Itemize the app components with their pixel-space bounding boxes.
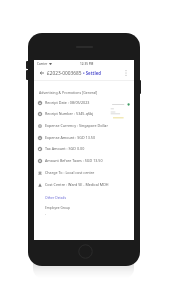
button[interactable]: Receipt Date : 08/05/2023 xyxy=(38,98,110,107)
staticText: Receipt Date : 08/05/2023 xyxy=(45,100,90,105)
button[interactable]: Other Details xyxy=(45,195,67,200)
staticText: Advertising & Promotions [General] xyxy=(39,90,98,95)
button[interactable]: Cost Centre : Ward 5E - Medical MDH xyxy=(38,180,110,189)
staticText: - xyxy=(45,212,46,216)
button[interactable]: Tax Amount : SGD 0.00 xyxy=(38,144,110,153)
staticText: 12:35 PM xyxy=(80,62,94,66)
staticText: Carrier xyxy=(37,62,48,66)
staticText: Cost Centre : Ward 5E - Medical MDH xyxy=(45,182,109,187)
staticText: Other Details xyxy=(45,195,67,200)
button[interactable]: Back xyxy=(38,68,45,78)
staticText: £2023-0003685 xyxy=(47,70,82,77)
button[interactable]: Receipt Number : 5345-q6bj xyxy=(38,109,110,118)
staticText: Employee Group xyxy=(45,206,70,210)
button[interactable]: Charge To : Local cost centre xyxy=(38,168,110,177)
button[interactable]: Expense Amount : SGD 13.50 xyxy=(38,133,110,142)
staticText: Amount Before Taxes : SGD 13.50 xyxy=(45,158,103,163)
button[interactable]: More options xyxy=(122,68,130,78)
staticText: • Settled xyxy=(83,70,101,76)
staticText: Expense Currency : Singapore Dollar xyxy=(45,123,108,128)
staticText: Tax Amount : SGD 0.00 xyxy=(45,146,85,151)
button[interactable]: Amount Before Taxes : SGD 13.50 xyxy=(38,156,110,165)
button[interactable]: Receipt image xyxy=(108,100,132,121)
staticText: Expense Amount : SGD 13.50 xyxy=(45,135,96,140)
staticText: Charge To : Local cost centre xyxy=(45,170,95,175)
button[interactable]: Expense Currency : Singapore Dollar xyxy=(38,121,110,130)
staticText: Receipt Number : 5345-q6bj xyxy=(45,111,94,116)
